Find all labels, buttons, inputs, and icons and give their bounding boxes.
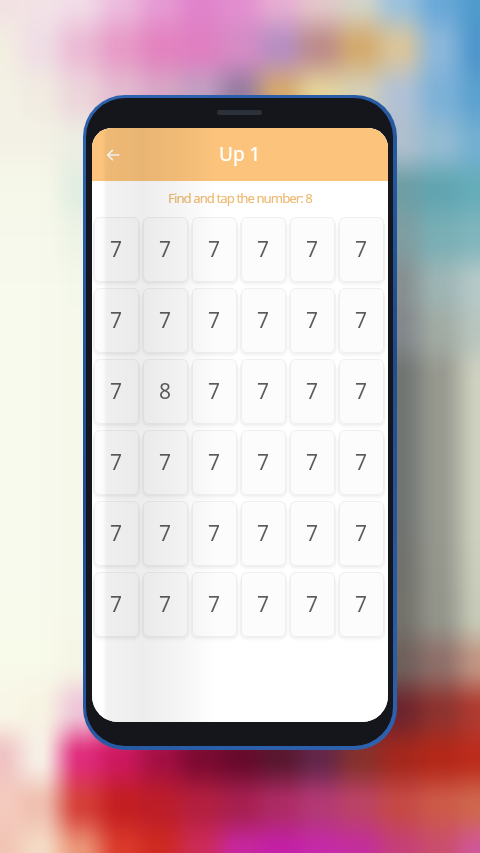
button[interactable]: 7 [290,217,335,282]
staticText: 7 [306,306,319,335]
staticText: Up 1 [219,141,261,167]
button[interactable]: 7 [339,288,384,353]
staticText: 7 [110,519,123,548]
button[interactable]: 7 [192,501,237,566]
button[interactable]: 8 [143,359,188,424]
staticText: 7 [257,519,270,548]
button[interactable]: 7 [290,359,335,424]
staticText: 7 [159,590,172,619]
staticText: 7 [306,377,319,406]
staticText: 7 [110,448,123,477]
staticText: 7 [110,590,123,619]
button[interactable]: 7 [290,501,335,566]
staticText: 7 [110,377,123,406]
staticText: 7 [306,235,319,264]
staticText: 7 [355,519,368,548]
button[interactable]: 7 [94,288,139,353]
staticText: 7 [257,590,270,619]
staticText: 7 [159,306,172,335]
button[interactable]: 7 [94,572,139,637]
button[interactable]: 7 [94,359,139,424]
button[interactable]: 7 [241,501,286,566]
button[interactable]: 7 [143,288,188,353]
button[interactable]: 7 [192,288,237,353]
button[interactable]: 7 [94,430,139,495]
staticText: 7 [208,590,221,619]
button[interactable]: 7 [241,430,286,495]
button[interactable]: 7 [339,430,384,495]
staticText: 7 [355,448,368,477]
staticText: 7 [159,519,172,548]
button[interactable]: 7 [192,572,237,637]
staticText: 7 [257,377,270,406]
button[interactable]: 7 [143,501,188,566]
staticText: 7 [257,448,270,477]
button[interactable]: 7 [241,359,286,424]
button[interactable]: 7 [339,359,384,424]
staticText: 7 [257,306,270,335]
staticText: 7 [159,448,172,477]
button[interactable]: 7 [339,217,384,282]
button[interactable]: 7 [192,359,237,424]
button[interactable]: 7 [290,288,335,353]
staticText: 7 [306,519,319,548]
button[interactable]: 7 [143,572,188,637]
button[interactable]: 7 [290,430,335,495]
button[interactable]: 7 [94,217,139,282]
button[interactable]: 7 [192,217,237,282]
button[interactable]: 7 [143,217,188,282]
button[interactable]: 7 [339,501,384,566]
staticText: 7 [110,235,123,264]
staticText: 7 [257,235,270,264]
staticText: 7 [159,235,172,264]
staticText: 7 [355,235,368,264]
button[interactable]: 7 [143,430,188,495]
staticText: 7 [355,590,368,619]
button[interactable]: Back [93,135,133,175]
staticText: 7 [306,448,319,477]
button[interactable]: 7 [339,572,384,637]
button[interactable]: 7 [94,501,139,566]
button[interactable]: 7 [241,288,286,353]
button[interactable]: 7 [241,217,286,282]
staticText: 7 [208,519,221,548]
staticText: 7 [355,306,368,335]
staticText: 8 [159,377,172,406]
button[interactable]: 7 [290,572,335,637]
staticText: Find and tap the number: 8 [168,189,312,207]
staticText: 7 [355,377,368,406]
staticText: 7 [306,590,319,619]
staticText: 7 [208,235,221,264]
staticText: 7 [208,377,221,406]
staticText: 7 [208,306,221,335]
staticText: 7 [110,306,123,335]
button[interactable]: 7 [241,572,286,637]
staticText: 7 [208,448,221,477]
button[interactable]: 7 [192,430,237,495]
